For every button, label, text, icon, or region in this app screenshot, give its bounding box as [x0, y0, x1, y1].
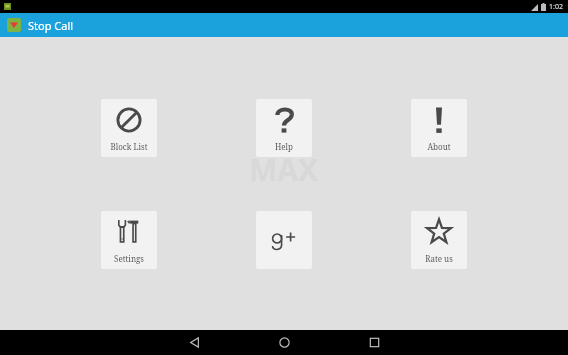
button[interactable]: Settings [101, 211, 157, 269]
staticText: Rate us [411, 253, 467, 264]
button[interactable]: Rate us [411, 211, 467, 269]
button[interactable]: Home [260, 330, 308, 355]
button[interactable]: Block List [101, 99, 157, 157]
button[interactable]: Back [170, 330, 218, 355]
button[interactable]: Recents [350, 330, 398, 355]
staticText: About [411, 141, 467, 152]
button[interactable]: Help [256, 99, 312, 157]
staticText: 1:02 [549, 2, 563, 12]
button[interactable]: About [411, 99, 467, 157]
staticText: MAX [249, 149, 319, 190]
staticText: Settings [101, 253, 157, 264]
staticText: Help [256, 141, 312, 152]
staticText: Stop Call [28, 18, 74, 33]
staticText: Block List [101, 141, 157, 152]
button[interactable] [256, 211, 312, 269]
